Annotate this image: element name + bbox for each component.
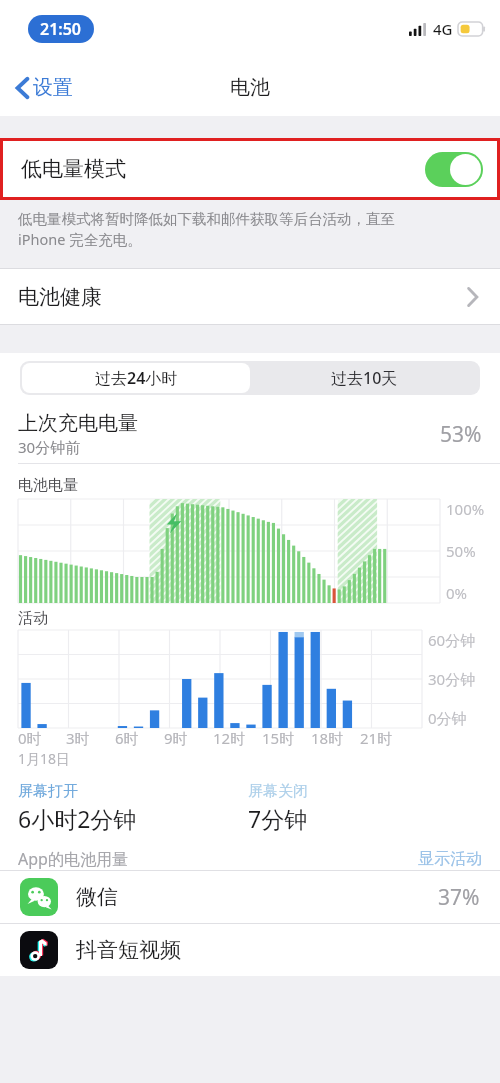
staticText: 电池 — [230, 75, 270, 100]
staticText: 50% — [446, 541, 476, 561]
staticText: 抖音短视频 — [76, 937, 181, 963]
staticText: 15时 — [262, 728, 295, 748]
staticText: 电池电量 — [18, 476, 78, 495]
staticText: 过去10天 — [331, 367, 398, 389]
staticText: 低电量模式 — [21, 156, 126, 182]
staticText: 3时 — [66, 728, 90, 748]
staticText: 30分钟前 — [18, 437, 81, 457]
staticText: 12时 — [213, 728, 246, 748]
button[interactable]: 电池健康 — [0, 268, 500, 325]
staticText: 30分钟 — [428, 669, 476, 689]
button[interactable]: 微信 — [0, 871, 500, 923]
staticText: 微信 — [76, 884, 118, 910]
staticText: 100% — [446, 499, 485, 519]
staticText: 18时 — [311, 728, 344, 748]
staticText: 21:50 — [40, 18, 82, 40]
staticText: 0% — [446, 583, 468, 603]
staticText: 4G — [433, 19, 453, 39]
staticText: 37% — [438, 883, 480, 912]
staticText: 显示活动 — [418, 849, 482, 869]
staticText: 屏幕打开 — [18, 782, 78, 801]
staticText: 6小时2分钟 — [18, 803, 137, 834]
staticText: 电池健康 — [18, 284, 102, 310]
staticText: 上次充电电量 — [18, 411, 138, 436]
button[interactable]: 过去10天 — [250, 363, 478, 393]
button[interactable]: 低电量模式开关 — [425, 152, 483, 187]
staticText: 活动 — [18, 609, 48, 628]
staticText: 屏幕关闭 — [248, 782, 308, 801]
button[interactable]: 设置 — [12, 69, 77, 106]
staticText: 0时 — [18, 728, 42, 748]
staticText: 1月18日 — [18, 749, 71, 768]
staticText: 21时 — [360, 728, 393, 748]
staticText: App的电池用量 — [18, 848, 128, 870]
staticText: 低电量模式将暂时降低如下载和邮件获取等后台活动，直至 iPhone 完全充电。 — [18, 210, 395, 250]
staticText: 9时 — [164, 728, 188, 748]
button[interactable]: 过去24小时 — [22, 363, 250, 393]
staticText: 设置 — [33, 75, 73, 100]
staticText: 过去24小时 — [95, 367, 178, 389]
staticText: 7分钟 — [248, 803, 308, 834]
staticText: 6时 — [115, 728, 139, 748]
button[interactable]: 低电量模式 — [3, 141, 497, 197]
button[interactable]: 显示活动 — [418, 849, 482, 869]
button[interactable]: 抖音短视频 — [0, 924, 500, 976]
staticText: 53% — [440, 420, 482, 449]
staticText: 0分钟 — [428, 708, 467, 728]
staticText: 60分钟 — [428, 630, 476, 650]
